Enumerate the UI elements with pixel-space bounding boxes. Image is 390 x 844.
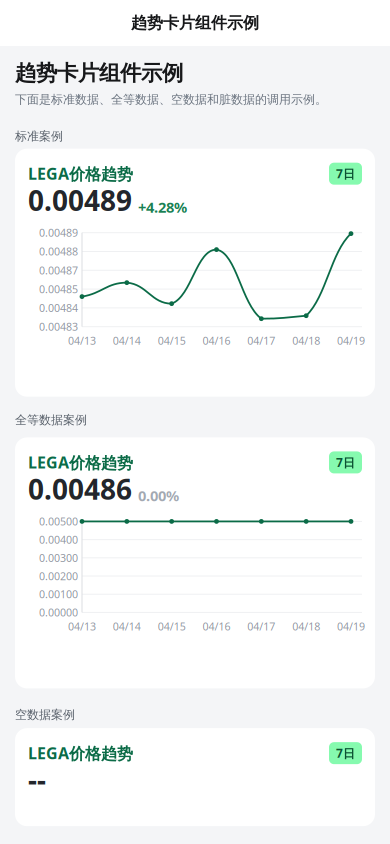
- staticText: 04/17: [247, 334, 275, 348]
- staticText: 04/15: [158, 334, 186, 348]
- staticText: 7日: [336, 166, 355, 182]
- staticText: 04/13: [68, 619, 96, 633]
- staticText: 0.00300: [39, 551, 78, 565]
- staticText: 04/16: [202, 334, 230, 348]
- staticText: 0.00489: [28, 181, 132, 219]
- staticText: 04/14: [113, 334, 141, 348]
- staticText: 04/15: [158, 619, 186, 633]
- staticText: 全等数据案例: [15, 413, 87, 427]
- staticText: 0.00400: [39, 532, 78, 547]
- staticText: 04/17: [247, 619, 275, 633]
- staticText: +4.28%: [138, 197, 187, 217]
- staticText: 04/18: [292, 619, 320, 633]
- staticText: 04/18: [292, 334, 320, 348]
- staticText: 04/14: [113, 619, 141, 633]
- button[interactable]: 7日: [329, 451, 362, 473]
- staticText: 04/19: [337, 334, 365, 348]
- staticText: 0.00%: [138, 486, 179, 505]
- staticText: 0.00500: [39, 514, 78, 528]
- staticText: 0.00487: [39, 263, 78, 277]
- staticText: 0.00484: [39, 301, 78, 315]
- staticText: 7日: [336, 454, 355, 470]
- staticText: 空数据案例: [15, 707, 75, 722]
- staticText: 趋势卡片组件示例: [15, 60, 183, 86]
- staticText: 0.00488: [39, 244, 78, 259]
- button[interactable]: 7日: [329, 163, 362, 185]
- staticText: 0.00489: [39, 226, 78, 240]
- staticText: 0.00486: [28, 470, 132, 507]
- staticText: 下面是标准数据、全等数据、空数据和脏数据的调用示例。: [15, 92, 327, 107]
- staticText: 0.00000: [39, 605, 78, 619]
- staticText: 7日: [336, 745, 355, 761]
- button[interactable]: 7日: [329, 742, 362, 764]
- staticText: 04/19: [337, 619, 365, 633]
- staticText: 0.00485: [39, 282, 78, 296]
- staticText: 标准案例: [15, 129, 63, 144]
- staticText: LEGA价格趋势: [28, 742, 133, 764]
- staticText: 趋势卡片组件示例: [131, 13, 259, 33]
- staticText: --: [28, 761, 46, 798]
- staticText: 0.00483: [39, 320, 78, 334]
- staticText: 0.00200: [39, 569, 78, 583]
- staticText: 0.00100: [39, 587, 78, 601]
- staticText: 04/13: [68, 334, 96, 348]
- staticText: LEGA价格趋势: [28, 452, 133, 473]
- staticText: 04/16: [202, 619, 230, 633]
- staticText: LEGA价格趋势: [28, 163, 133, 184]
